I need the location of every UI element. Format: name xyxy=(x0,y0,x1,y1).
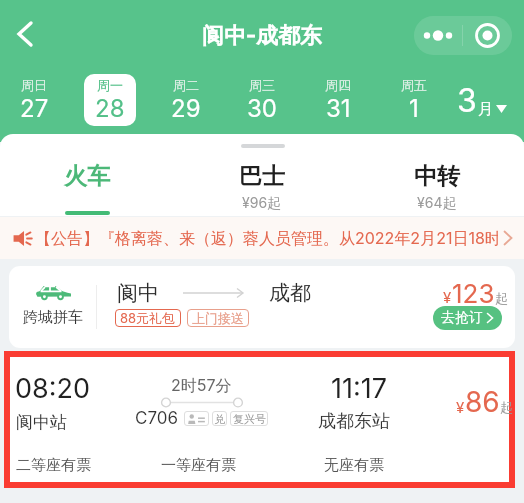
staticText: 周五 xyxy=(401,77,427,93)
staticText: 周二 xyxy=(173,77,199,93)
staticText: 2时57分 xyxy=(171,375,232,395)
button[interactable]: 3 xyxy=(452,74,512,126)
button[interactable]: Back xyxy=(3,12,47,56)
button[interactable]: 中转 xyxy=(349,134,524,216)
staticText: 阆中站 xyxy=(16,412,67,433)
staticText: 30 xyxy=(247,94,277,123)
staticText: 88元礼包 xyxy=(120,310,176,326)
staticText: C706 xyxy=(135,408,179,429)
staticText: 二等座有票 xyxy=(16,456,161,475)
staticText: 无座有票 xyxy=(324,456,384,475)
button[interactable]: 周二 xyxy=(160,74,212,126)
staticText: 成都东站 xyxy=(318,410,390,433)
staticText: 阆中 xyxy=(117,280,159,306)
staticText: 1 xyxy=(409,94,419,123)
button[interactable]: 周五 xyxy=(388,74,440,126)
staticText: 阆中-成都东 xyxy=(202,22,323,50)
staticText: 86 xyxy=(465,385,500,419)
staticText: 周一 xyxy=(97,77,123,93)
staticText: ¥ xyxy=(456,398,465,416)
button[interactable]: 跨城拼车 xyxy=(9,266,515,348)
button[interactable]: 周一 xyxy=(84,74,136,126)
staticText: 兑 xyxy=(214,412,225,426)
staticText: 周日 xyxy=(21,77,47,93)
staticText: 月 xyxy=(478,100,493,119)
staticText: 一等座有票 xyxy=(161,456,324,475)
button[interactable]: More options xyxy=(414,16,512,55)
button[interactable]: 【公告】『格离蓉、来（返）蓉人员管理。从2022年2月21日18时 xyxy=(0,217,524,259)
staticText: 火车 xyxy=(64,162,110,191)
staticText: 复兴号 xyxy=(233,412,266,426)
button[interactable]: 周三 xyxy=(236,74,288,126)
staticText: ¥96起 xyxy=(242,194,282,212)
button[interactable]: 火车 xyxy=(0,134,174,216)
button[interactable]: 去抢订 xyxy=(433,306,502,330)
button[interactable]: 周四 xyxy=(312,74,364,126)
button[interactable]: 周日 xyxy=(8,74,60,126)
staticText: 巴士 xyxy=(239,162,285,191)
staticText: 【公告】『格离蓉、来（返）蓉人员管理。从2022年2月21日18时 xyxy=(35,228,498,248)
staticText: 31 xyxy=(326,94,351,123)
staticText: 起 xyxy=(495,290,508,306)
button[interactable]: 08:20 xyxy=(10,357,509,482)
staticText: 周四 xyxy=(325,77,351,93)
staticText: 起 xyxy=(500,399,513,415)
staticText: 11:17 xyxy=(331,372,388,405)
staticText: ¥64起 xyxy=(417,194,457,212)
staticText: 27 xyxy=(20,94,49,123)
staticText: 中转 xyxy=(414,162,460,191)
staticText: 123 xyxy=(452,278,495,309)
staticText: 去抢订 xyxy=(441,309,483,327)
staticText: 跨城拼车 xyxy=(23,308,83,327)
staticText: 08:20 xyxy=(15,372,91,405)
button[interactable]: 巴士 xyxy=(174,134,349,216)
staticText: 上门接送 xyxy=(192,310,244,326)
staticText: 28 xyxy=(95,94,125,123)
staticText: ¥ xyxy=(443,288,452,306)
staticText: 29 xyxy=(171,94,201,123)
staticText: 周三 xyxy=(249,77,275,93)
staticText: 成都 xyxy=(269,280,311,306)
staticText: 3 xyxy=(457,81,477,120)
